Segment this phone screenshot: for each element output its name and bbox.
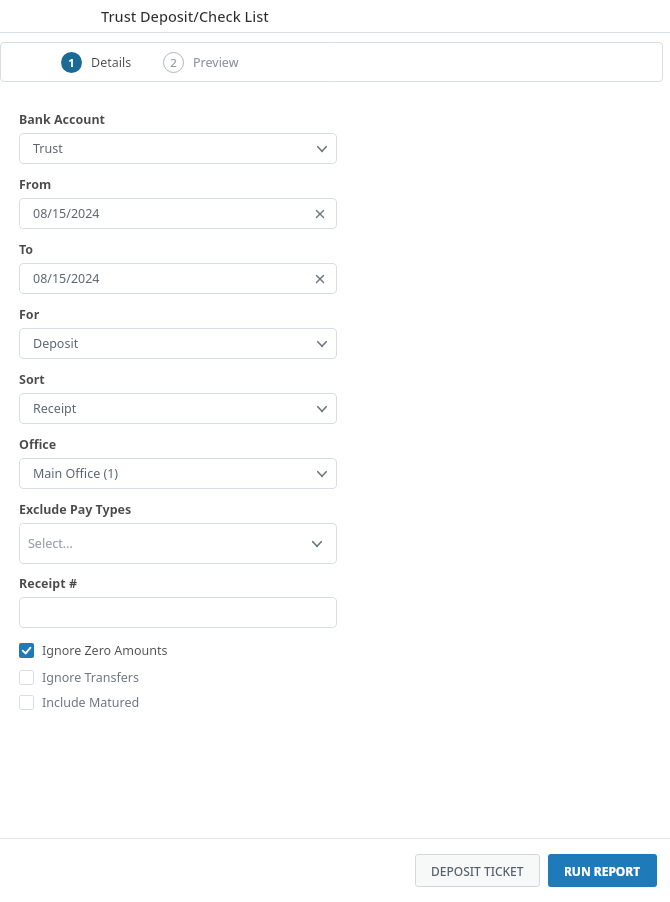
button[interactable]: Ignore Zero Amounts: [19, 642, 168, 659]
staticText: For: [19, 306, 40, 323]
staticText: Deposit: [33, 335, 79, 352]
staticText: To: [19, 241, 34, 258]
button[interactable]: Receipt: [19, 393, 337, 424]
staticText: Preview: [193, 54, 239, 71]
staticText: Receipt #: [19, 575, 77, 592]
staticText: DEPOSIT TICKET: [431, 863, 524, 879]
staticText: Select...: [28, 535, 73, 552]
staticText: 08/15/2024: [33, 205, 100, 222]
staticText: RUN REPORT: [564, 863, 641, 879]
staticText: 1: [68, 55, 75, 71]
button[interactable]: RUN REPORT: [548, 854, 657, 887]
staticText: Ignore Transfers: [42, 669, 139, 686]
button[interactable]: 1: [61, 52, 132, 73]
button[interactable]: Ignore Transfers: [19, 669, 139, 686]
staticText: Receipt: [33, 400, 77, 417]
staticText: Ignore Zero Amounts: [42, 642, 168, 659]
staticText: Office: [19, 436, 57, 453]
staticText: 2: [170, 55, 177, 71]
button[interactable]: 08/15/2024: [19, 263, 337, 294]
staticText: Details: [91, 54, 132, 71]
button[interactable]: [19, 597, 337, 628]
staticText: From: [19, 176, 52, 193]
staticText: Trust Deposit/Check List: [101, 6, 269, 26]
button[interactable]: Main Office (1): [19, 458, 337, 489]
button[interactable]: Deposit: [19, 328, 337, 359]
button[interactable]: DEPOSIT TICKET: [415, 854, 540, 887]
button[interactable]: 2: [163, 52, 239, 73]
button[interactable]: Include Matured: [19, 694, 140, 711]
button[interactable]: Clear date: [312, 271, 328, 287]
staticText: Sort: [19, 371, 45, 388]
button[interactable]: 08/15/2024: [19, 198, 337, 229]
staticText: Main Office (1): [33, 465, 119, 482]
button[interactable]: Clear date: [312, 206, 328, 222]
button[interactable]: Select...: [19, 523, 337, 564]
staticText: Include Matured: [42, 694, 140, 711]
staticText: Trust: [33, 140, 63, 157]
staticText: Exclude Pay Types: [19, 501, 132, 518]
button[interactable]: Trust: [19, 133, 337, 164]
staticText: 08/15/2024: [33, 270, 100, 287]
staticText: Bank Account: [19, 111, 105, 128]
